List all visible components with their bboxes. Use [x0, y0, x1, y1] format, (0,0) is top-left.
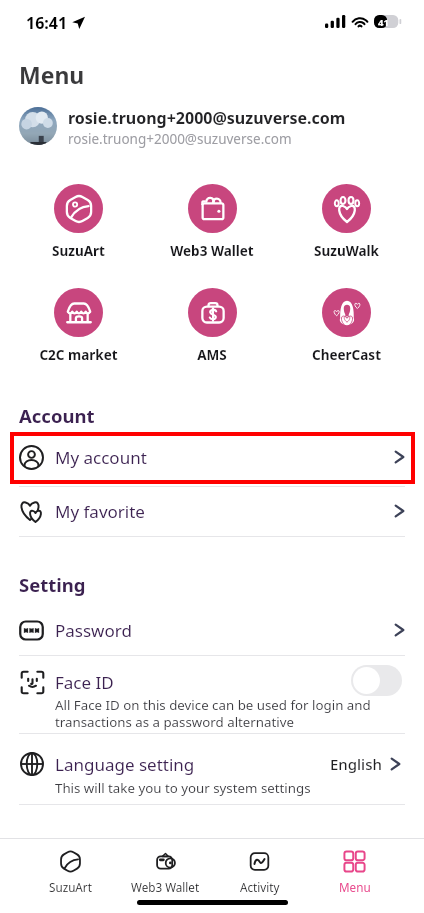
staticText: 41: [378, 16, 389, 29]
staticText: My favorite: [55, 500, 145, 523]
button[interactable]: Web3 Wallet: [118, 843, 213, 895]
staticText: CheerCast: [312, 346, 381, 364]
button[interactable]: My favorite: [0, 486, 424, 536]
button[interactable]: [0, 734, 424, 804]
button[interactable]: My account: [0, 432, 424, 482]
staticText: Password: [55, 619, 132, 642]
staticText: Web3 Wallet: [131, 879, 200, 895]
staticText: rosie.truong+2000@suzuverse.com: [68, 107, 346, 129]
staticText: SuzuWalk: [314, 242, 379, 260]
staticText: English: [330, 754, 382, 774]
staticText: Activity: [240, 879, 280, 895]
staticText: Face ID: [55, 671, 114, 694]
staticText: Menu: [19, 59, 85, 90]
staticText: AMS: [197, 346, 227, 364]
button[interactable]: Web3 Wallet: [145, 184, 279, 260]
button[interactable]: SuzuArt: [23, 843, 118, 895]
button[interactable]: C2C market: [11, 288, 145, 364]
button[interactable]: Menu: [307, 843, 402, 895]
staticText: My account: [55, 446, 147, 469]
staticText: Menu: [339, 879, 371, 895]
button[interactable]: CheerCast: [279, 288, 413, 364]
staticText: C2C market: [39, 346, 118, 364]
staticText: SuzuArt: [49, 879, 92, 895]
staticText: SuzuArt: [52, 242, 105, 260]
button[interactable]: Password: [0, 605, 424, 655]
staticText: Web3 Wallet: [170, 242, 254, 260]
button[interactable]: Face ID toggle: [351, 665, 402, 696]
button[interactable]: [0, 656, 424, 733]
staticText: Setting: [19, 572, 86, 597]
staticText: This will take you to your system settin…: [55, 779, 311, 797]
button[interactable]: SuzuArt: [11, 184, 145, 260]
staticText: 16:41: [26, 12, 68, 34]
button[interactable]: Activity: [212, 843, 307, 895]
staticText: Language setting: [55, 753, 195, 776]
button[interactable]: AMS: [145, 288, 279, 364]
button[interactable]: SuzuWalk: [279, 184, 413, 260]
staticText: All Face ID on this device can be used f…: [55, 696, 371, 731]
staticText: Account: [19, 403, 95, 428]
staticText: rosie.truong+2000@suzuverse.com: [68, 130, 292, 148]
